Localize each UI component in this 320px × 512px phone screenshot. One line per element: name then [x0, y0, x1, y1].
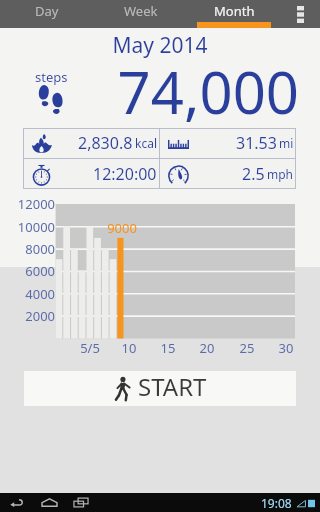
staticText: 6000 [0, 262, 55, 280]
staticText: 15 [148, 339, 188, 357]
staticText: 12000 [0, 195, 55, 213]
staticText: 10 [109, 339, 149, 357]
staticText: Day [35, 2, 59, 20]
button[interactable]: 31.53 [168, 128, 294, 158]
staticText: mph [267, 166, 294, 182]
button[interactable]: 2,830.8 [31, 128, 157, 158]
staticText: START [138, 370, 207, 403]
staticText: 30 [266, 339, 306, 357]
staticText: 2000 [0, 307, 55, 325]
staticText: 5/5 [70, 339, 110, 357]
staticText: 8000 [0, 240, 55, 258]
staticText: 20 [187, 339, 227, 357]
staticText: Week [124, 2, 158, 20]
staticText: steps [35, 68, 68, 86]
button[interactable]: Back [6, 493, 26, 512]
button[interactable]: Recent apps [71, 493, 91, 512]
button[interactable]: Home [39, 493, 59, 512]
staticText: May 2014 [0, 31, 320, 60]
button[interactable]: Month [187, 0, 281, 28]
staticText: 19:08 [261, 495, 292, 511]
staticText: 2.5 [242, 163, 265, 185]
staticText: 4000 [0, 285, 55, 303]
button[interactable]: Week [94, 0, 187, 28]
button[interactable]: Day [0, 0, 94, 28]
button[interactable]: More options [281, 0, 320, 28]
button[interactable]: START [24, 371, 296, 406]
staticText: 31.53 [236, 132, 277, 154]
staticText: 2,830.8 [78, 132, 133, 154]
staticText: 25 [227, 339, 267, 357]
staticText: 10000 [0, 218, 55, 236]
staticText: Month [214, 2, 255, 20]
staticText: kcal [135, 135, 157, 151]
staticText: 12:20:00 [93, 163, 157, 185]
button[interactable]: 2.5 [168, 159, 294, 189]
button[interactable]: 12:20:00 [31, 159, 157, 189]
staticText: 74,000 [0, 52, 299, 131]
staticText: mi [279, 135, 294, 151]
staticText: 9000 [92, 219, 152, 237]
